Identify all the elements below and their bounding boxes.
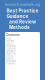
button[interactable]: References — [5, 60, 40, 62]
button[interactable]: Synthesis — [5, 50, 40, 52]
button[interactable]: Screening — [5, 45, 40, 47]
button[interactable]: Funding — [5, 57, 40, 60]
button[interactable]: Scope — [5, 37, 40, 40]
staticText: Search — [6, 42, 12, 45]
button[interactable]: Limits — [5, 55, 40, 57]
staticText: Funding — [6, 57, 13, 60]
button[interactable]: Methods — [5, 40, 40, 42]
button[interactable]: Search — [5, 42, 40, 45]
staticText: Contents — [6, 33, 20, 37]
staticText: Synthesis — [6, 50, 15, 52]
staticText: research.example.org — [5, 3, 40, 6]
button[interactable]: Appendix — [5, 62, 40, 65]
staticText: Reporting — [6, 52, 15, 55]
button[interactable]: Reporting — [5, 52, 40, 55]
button[interactable]: Appraisal — [5, 47, 40, 50]
staticText: Appendix — [6, 62, 15, 65]
staticText: Limits — [6, 55, 13, 57]
staticText: References — [6, 60, 16, 62]
staticText: and Review Methods — [9, 19, 36, 30]
staticText: Best Practice Guidance — [6, 8, 38, 19]
staticText: Screening — [6, 45, 15, 47]
staticText: Methods — [6, 40, 14, 42]
staticText: Appraisal — [6, 47, 16, 50]
staticText: Scope — [6, 37, 11, 40]
